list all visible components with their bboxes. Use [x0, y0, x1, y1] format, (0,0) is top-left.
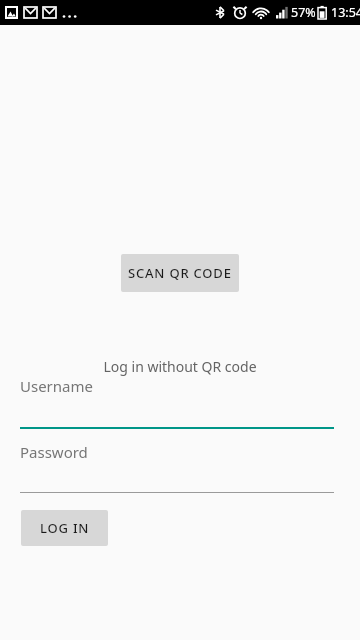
- staticText: Password: [20, 442, 88, 462]
- staticText: Log in without QR code: [103, 357, 257, 376]
- button[interactable]: Log in without QR code: [0, 356, 360, 376]
- button[interactable]: LOG IN: [21, 510, 108, 546]
- staticText: SCAN QR CODE: [128, 264, 232, 282]
- staticText: LOG IN: [40, 519, 90, 537]
- staticText: 57%: [291, 4, 316, 21]
- staticText: 13:54: [331, 4, 360, 21]
- button[interactable]: Password: [20, 440, 334, 494]
- other: Status bar: [0, 0, 360, 25]
- button[interactable]: SCAN QR CODE: [121, 254, 239, 292]
- button[interactable]: Username: [20, 374, 334, 430]
- staticText: Username: [20, 376, 93, 396]
